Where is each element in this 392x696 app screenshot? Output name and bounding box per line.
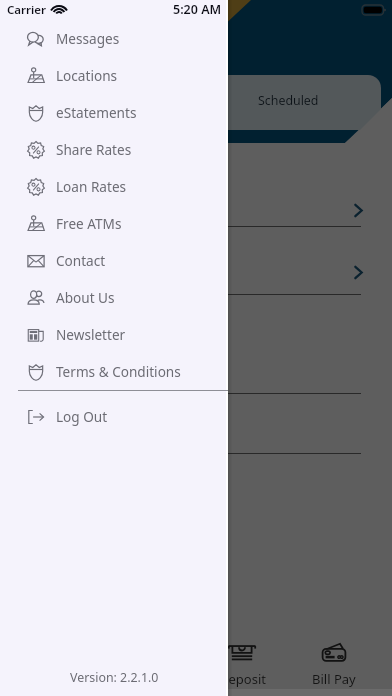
button[interactable]: Share Rates xyxy=(0,131,228,168)
button[interactable]: Log Out xyxy=(0,398,228,435)
staticText: 5:20 AM xyxy=(173,1,222,18)
button[interactable]: Bill Pay xyxy=(288,632,380,696)
staticText: Scheduled xyxy=(258,92,319,109)
button[interactable]: Newsletter xyxy=(0,316,228,353)
button[interactable]: Scheduled Transfer xyxy=(11,143,381,227)
button[interactable]: Transfer xyxy=(104,632,196,696)
staticText: Sep 10, 2024 xyxy=(25,328,97,344)
staticText: eStatements xyxy=(56,103,137,122)
button[interactable]: Loan Payment xyxy=(11,227,381,295)
staticText: Loan Rates xyxy=(56,177,127,196)
staticText: Locations xyxy=(56,66,118,85)
button[interactable]: Scheduled xyxy=(196,75,381,130)
staticText: Log Out xyxy=(56,407,108,426)
staticText: Credit Card xyxy=(25,404,99,423)
staticText: Newsletter xyxy=(56,325,126,344)
staticText: Loan Payment xyxy=(25,237,120,256)
staticText: $412.38 xyxy=(25,280,74,295)
button[interactable]: Accounts xyxy=(12,632,104,696)
staticText: Pending xyxy=(79,92,128,109)
staticText: Sep 02, 2024 xyxy=(25,260,97,276)
staticText: $100.00 xyxy=(25,348,74,366)
button[interactable]: Loan Rates xyxy=(0,168,228,205)
staticText: Free ATMs xyxy=(56,214,122,233)
button[interactable]: Pending xyxy=(11,75,196,130)
staticText: Messages xyxy=(56,29,120,48)
staticText: Carrier xyxy=(7,2,47,18)
staticText: About Us xyxy=(56,288,115,307)
button[interactable]: About Us xyxy=(0,279,228,316)
button[interactable]: Locations xyxy=(0,57,228,94)
staticText: Contact xyxy=(56,251,106,270)
staticText: Share Rates xyxy=(56,140,132,159)
button[interactable]: Messages xyxy=(0,20,228,57)
button[interactable]: Deposit xyxy=(196,632,288,696)
button[interactable]: eStatements xyxy=(0,94,228,131)
button[interactable]: Contact xyxy=(0,242,228,279)
staticText: Accounts xyxy=(30,670,86,688)
staticText: Terms & Conditions xyxy=(56,362,181,381)
staticText: Transfer xyxy=(125,670,176,688)
staticText: Version: 2.2.1.0 xyxy=(70,669,159,686)
button[interactable]: Credit Card xyxy=(11,394,381,454)
staticText: Deposit xyxy=(219,670,266,688)
button[interactable]: Auto Savings xyxy=(11,295,381,394)
button[interactable]: Terms & Conditions xyxy=(0,353,228,390)
button[interactable]: Free ATMs xyxy=(0,205,228,242)
staticText: Scheduled Transfer xyxy=(25,153,152,172)
staticText: Bill Pay xyxy=(312,670,356,688)
staticText: Aug 28, 2024 xyxy=(25,176,99,192)
